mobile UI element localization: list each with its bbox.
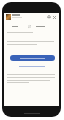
button[interactable] [35, 23, 49, 29]
button[interactable]: Swap languages [26, 23, 32, 29]
button[interactable]: Notifications [46, 14, 52, 20]
button[interactable] [11, 23, 21, 29]
button[interactable] [10, 55, 55, 61]
button[interactable]: Account photo [6, 14, 11, 20]
button[interactable] [4, 63, 59, 69]
button[interactable]: Close [51, 14, 57, 20]
